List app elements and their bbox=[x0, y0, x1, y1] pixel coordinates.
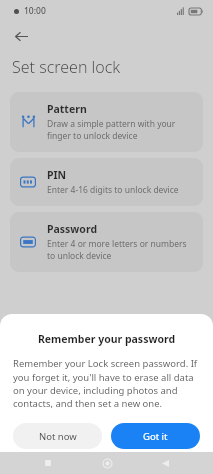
button[interactable]: Pattern bbox=[10, 92, 203, 152]
staticText: Pattern bbox=[47, 102, 87, 116]
button[interactable]: Back bbox=[155, 453, 175, 473]
button[interactable]: Password bbox=[10, 212, 203, 272]
button[interactable]: Recent apps bbox=[38, 453, 58, 473]
staticText: 10:00 bbox=[24, 5, 46, 17]
button[interactable]: Got it bbox=[111, 423, 200, 449]
staticText: PIN bbox=[47, 168, 67, 182]
staticText: Not now bbox=[39, 430, 77, 443]
staticText: Remember your password bbox=[13, 332, 200, 346]
staticText: Draw a simple pattern with your finger t… bbox=[47, 118, 194, 142]
staticText: Enter 4-16 digits to unlock device bbox=[47, 184, 179, 196]
staticText: Remember your Lock screen password. If y… bbox=[13, 357, 200, 409]
button[interactable]: PIN bbox=[10, 158, 203, 206]
staticText: Password bbox=[47, 222, 98, 236]
staticText: Set screen lock bbox=[12, 56, 121, 78]
button[interactable]: Back bbox=[10, 25, 32, 47]
button[interactable]: Not now bbox=[13, 423, 102, 449]
staticText: Enter 4 or more letters or numbers to un… bbox=[47, 238, 194, 262]
staticText: Got it bbox=[143, 430, 168, 443]
button[interactable]: Home bbox=[97, 453, 117, 473]
